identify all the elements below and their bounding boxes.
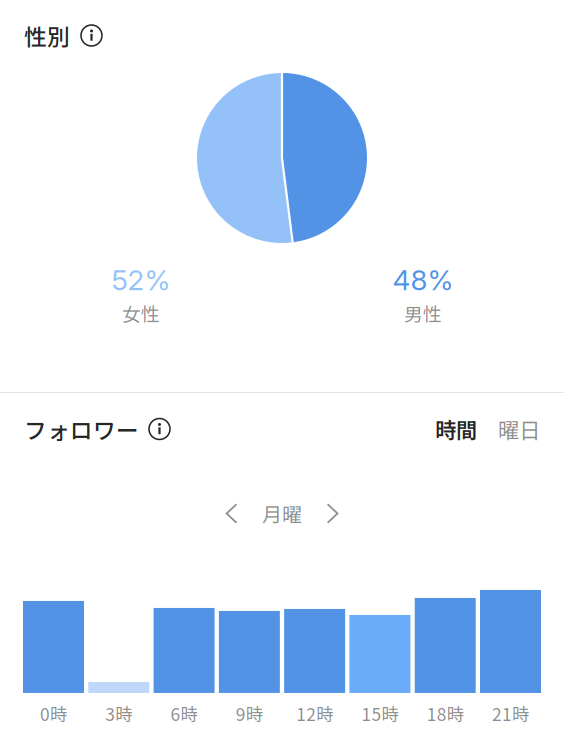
staticText: 52% — [111, 263, 170, 297]
staticText: 48% — [392, 263, 453, 297]
staticText: 21時 — [492, 701, 529, 726]
staticText: 時間 — [435, 414, 477, 444]
staticText: 女性 — [122, 300, 160, 327]
staticText: 18時 — [427, 701, 464, 726]
staticText: 3時 — [105, 701, 132, 726]
staticText: 15時 — [361, 701, 398, 726]
button[interactable]: 曜日 — [498, 414, 540, 444]
staticText: 0時 — [40, 701, 67, 726]
button[interactable]: 性別についての詳細 — [81, 25, 102, 46]
button[interactable]: 次の曜日 — [326, 503, 339, 524]
staticText: 性別 — [24, 19, 70, 52]
staticText: 9時 — [236, 701, 263, 726]
button[interactable]: 時間 — [435, 414, 477, 444]
button[interactable]: フォロワーについての詳細 — [149, 418, 170, 439]
staticText: 6時 — [171, 701, 198, 726]
staticText: 曜日 — [498, 414, 540, 444]
staticText: 月曜 — [262, 499, 302, 528]
staticText: 男性 — [404, 300, 442, 327]
button[interactable]: 前の曜日 — [225, 503, 238, 524]
staticText: フォロワー — [24, 413, 139, 445]
staticText: 12時 — [296, 701, 333, 726]
